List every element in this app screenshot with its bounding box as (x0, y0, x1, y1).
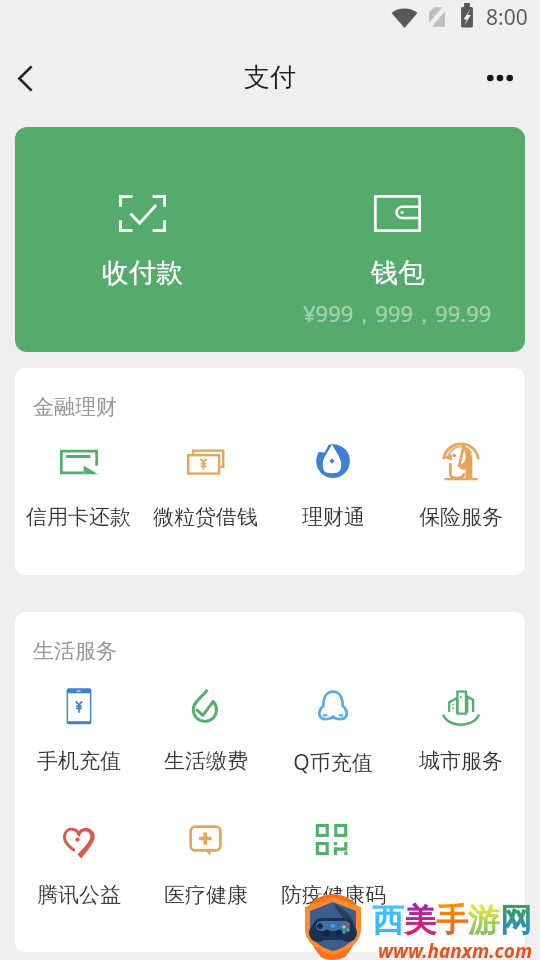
staticText: 西 (372, 900, 404, 940)
staticText: 生活缴费 (164, 748, 248, 774)
staticText: 钱包 (371, 256, 425, 290)
staticText: 城市服务 (419, 748, 503, 774)
button[interactable]: 腾讯公益 (15, 821, 142, 908)
button[interactable]: Q币充值 (269, 687, 397, 777)
staticText: 美 (404, 900, 436, 940)
button[interactable]: 手机充值 (15, 687, 142, 774)
button[interactable]: 防疫健康码 (269, 821, 397, 908)
staticText: 微粒贷借钱 (153, 504, 258, 530)
staticText: 手机充值 (37, 748, 121, 774)
staticText: 理财通 (302, 504, 365, 530)
staticText: 8:00 (486, 3, 528, 32)
button[interactable]: 信用卡还款 (15, 443, 142, 530)
button[interactable]: 城市服务 (397, 687, 525, 774)
staticText: 腾讯公益 (37, 882, 121, 908)
button[interactable]: 理财通 (269, 443, 397, 530)
staticText: 生活服务 (33, 638, 117, 664)
staticText: www.hanxm.com (378, 938, 533, 960)
staticText: 手 (436, 900, 468, 940)
staticText: 支付 (244, 61, 296, 94)
button[interactable]: Back (1, 54, 49, 102)
staticText: 收付款 (102, 256, 183, 290)
staticText: ¥999，999，99.99 (303, 298, 492, 328)
button[interactable]: 保险服务 (397, 443, 525, 530)
staticText: 网 (500, 900, 532, 940)
button[interactable]: 医疗健康 (142, 821, 269, 908)
staticText: 信用卡还款 (26, 504, 131, 530)
button[interactable]: More options (476, 54, 524, 102)
staticText: 游 (468, 900, 500, 940)
staticText: 防疫健康码 (281, 882, 386, 908)
button[interactable]: 钱包 (270, 127, 525, 352)
staticText: 医疗健康 (164, 882, 248, 908)
staticText: 保险服务 (419, 504, 503, 530)
button[interactable]: 收付款 (15, 127, 270, 352)
button[interactable]: 生活缴费 (142, 687, 269, 774)
button[interactable]: 微粒贷借钱 (142, 443, 269, 530)
staticText: 金融理财 (33, 394, 117, 420)
staticText: Q币充值 (293, 748, 373, 777)
